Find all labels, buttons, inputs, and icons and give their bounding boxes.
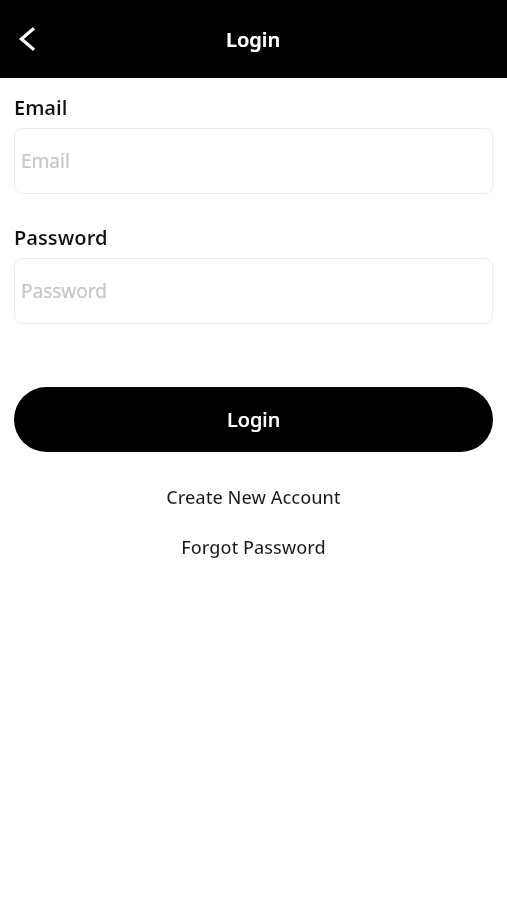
staticText: Password bbox=[21, 278, 107, 304]
staticText: Forgot Password bbox=[181, 535, 326, 560]
button[interactable]: Forgot Password bbox=[0, 534, 507, 560]
staticText: Email bbox=[14, 94, 68, 121]
staticText: Login bbox=[226, 26, 281, 53]
staticText: Password bbox=[14, 224, 108, 251]
button[interactable]: Login bbox=[14, 387, 493, 452]
staticText: Login bbox=[227, 406, 281, 433]
staticText: Create New Account bbox=[166, 485, 341, 510]
button[interactable]: Password bbox=[14, 258, 493, 324]
button[interactable]: Back bbox=[6, 17, 50, 61]
button[interactable]: Create New Account bbox=[0, 484, 507, 510]
button[interactable]: Email bbox=[14, 128, 493, 194]
staticText: Email bbox=[21, 148, 70, 174]
